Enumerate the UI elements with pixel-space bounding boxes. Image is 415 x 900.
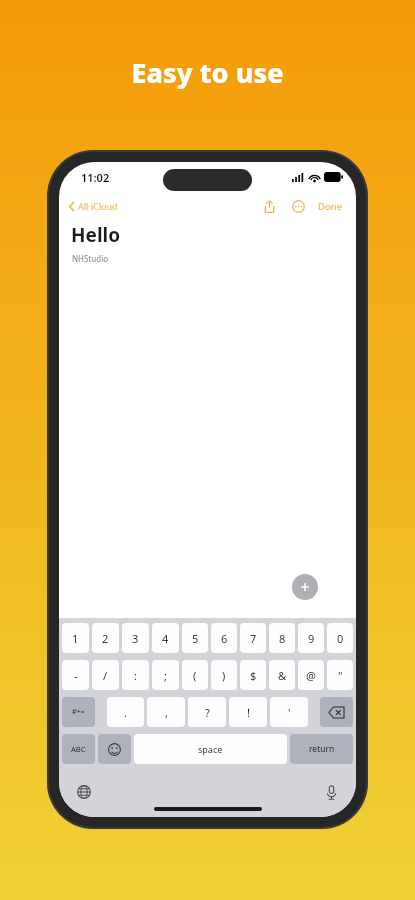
button[interactable]: All iCloud [66, 198, 121, 214]
button[interactable]: / [92, 660, 119, 690]
button[interactable]: 1 [62, 623, 89, 653]
button[interactable]: Add [292, 574, 318, 600]
button[interactable]: 3 [122, 623, 149, 653]
staticText: 4 [162, 631, 169, 646]
button[interactable]: More options [288, 196, 308, 216]
button[interactable]: : [122, 660, 149, 690]
button[interactable]: 8 [269, 623, 295, 653]
staticText: $ [250, 668, 257, 683]
staticText: 8 [279, 631, 286, 646]
staticText: ) [222, 668, 226, 683]
button[interactable]: & [269, 660, 295, 690]
staticText: Hello [71, 222, 121, 248]
button[interactable]: , [147, 697, 185, 727]
staticText: 6 [221, 631, 228, 646]
button[interactable]: space [134, 734, 287, 764]
button[interactable]: Share [259, 196, 279, 216]
button[interactable]: 6 [211, 623, 237, 653]
staticText: @ [306, 668, 316, 683]
button[interactable]: ) [211, 660, 237, 690]
staticText: ! [247, 705, 250, 720]
staticText: ABC [71, 744, 86, 754]
button[interactable]: 7 [240, 623, 266, 653]
button[interactable]: Emoji [98, 734, 131, 764]
staticText: " [338, 668, 343, 683]
staticText: 1 [72, 631, 79, 646]
button[interactable]: #+= [62, 697, 95, 727]
staticText: 5 [192, 631, 199, 646]
staticText: . [124, 705, 127, 720]
staticText: ' [288, 705, 291, 720]
button[interactable]: ? [188, 697, 226, 727]
button[interactable]: 2 [92, 623, 119, 653]
staticText: : [134, 668, 137, 683]
button[interactable]: 9 [298, 623, 324, 653]
button[interactable]: . [107, 697, 144, 727]
staticText: return [309, 743, 335, 755]
staticText: 3 [132, 631, 139, 646]
staticText: , [165, 705, 168, 720]
button[interactable]: 5 [182, 623, 208, 653]
staticText: space [198, 743, 223, 755]
staticText: NHStudio [72, 253, 109, 264]
staticText: All iCloud [78, 200, 118, 212]
staticText: ( [193, 668, 197, 683]
staticText: 11:02 [81, 170, 110, 185]
staticText: ? [205, 705, 210, 720]
button[interactable]: Backspace [320, 697, 353, 727]
button[interactable]: 4 [152, 623, 179, 653]
staticText: #+= [72, 707, 85, 717]
button[interactable]: Switch keyboard [73, 781, 95, 803]
button[interactable]: " [327, 660, 353, 690]
staticText: 7 [250, 631, 257, 646]
staticText: ; [164, 668, 167, 683]
staticText: 9 [308, 631, 315, 646]
button[interactable]: ABC [62, 734, 95, 764]
staticText: Done [318, 200, 343, 213]
staticText: & [278, 668, 287, 683]
staticText: 0 [337, 631, 344, 646]
button[interactable]: return [290, 734, 353, 764]
staticText: Easy to use [0, 54, 415, 91]
button[interactable]: - [62, 660, 89, 690]
button[interactable]: Done [315, 198, 346, 215]
staticText: 2 [102, 631, 109, 646]
button[interactable]: ( [182, 660, 208, 690]
button[interactable]: @ [298, 660, 324, 690]
button[interactable]: 0 [327, 623, 353, 653]
button[interactable]: ' [270, 697, 308, 727]
button[interactable]: $ [240, 660, 266, 690]
button[interactable]: Dictate [320, 781, 342, 803]
staticText: - [74, 668, 78, 683]
button[interactable]: ; [152, 660, 179, 690]
staticText: / [103, 668, 108, 683]
button[interactable]: ! [229, 697, 267, 727]
